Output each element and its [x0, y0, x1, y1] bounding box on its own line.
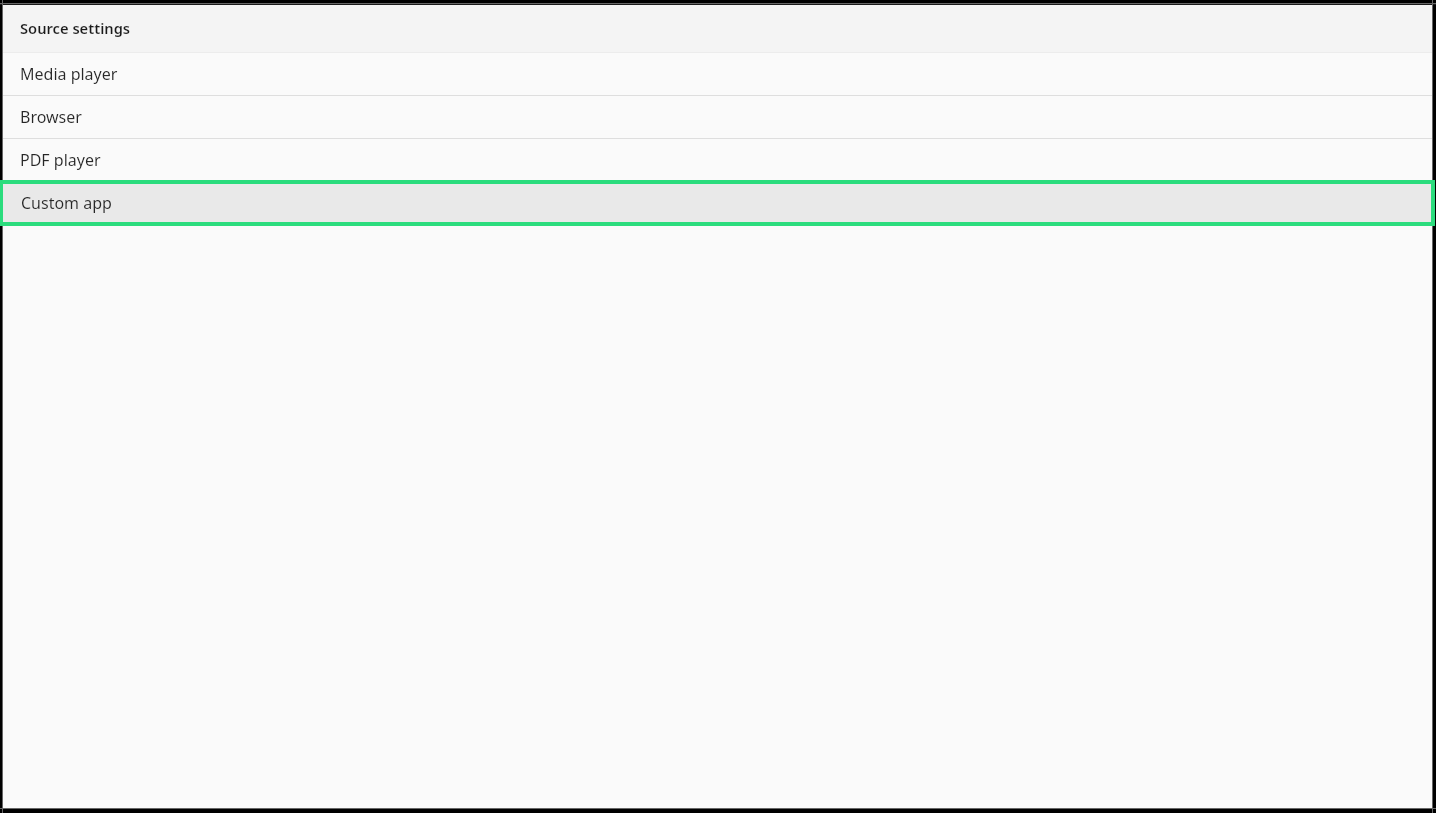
- button[interactable]: PDF player: [3, 139, 1432, 181]
- staticText: Source settings: [20, 18, 131, 38]
- staticText: PDF player: [20, 149, 101, 171]
- button[interactable]: Browser: [3, 96, 1432, 138]
- staticText: Media player: [20, 63, 118, 85]
- button[interactable]: Media player: [3, 53, 1432, 95]
- staticText: Browser: [20, 106, 82, 128]
- staticText: Custom app: [21, 192, 112, 214]
- button[interactable]: Custom app: [0, 180, 1435, 226]
